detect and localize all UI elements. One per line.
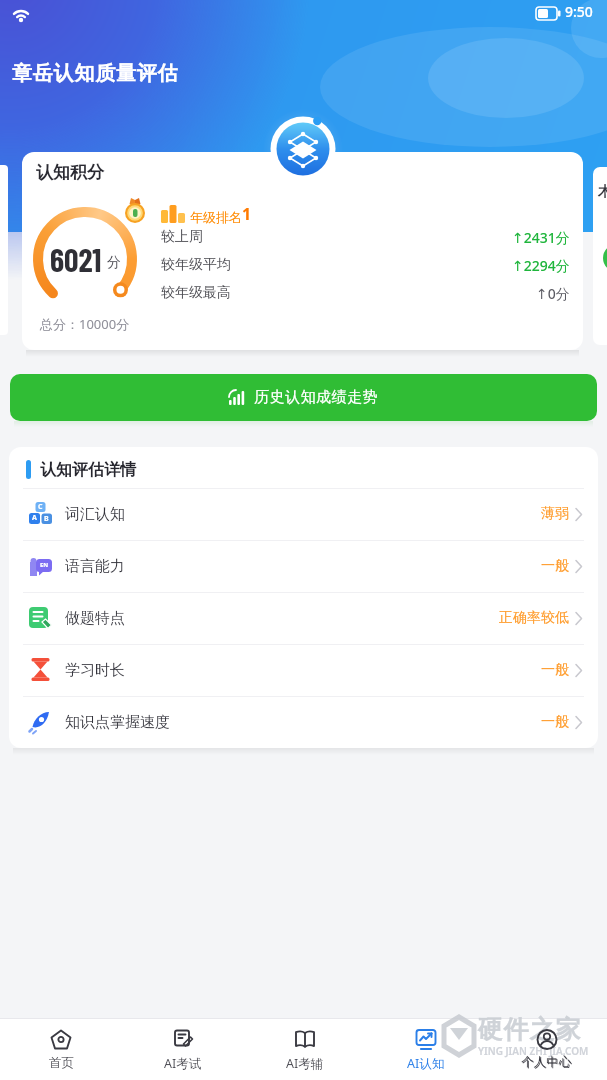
staticText: 个人中心 xyxy=(521,1054,571,1070)
staticText: 个人中心 xyxy=(522,1055,572,1071)
button[interactable]: 学习时长 xyxy=(9,644,598,696)
button[interactable]: AI认知 xyxy=(365,1018,486,1080)
staticText: AI考辅 xyxy=(286,1055,324,1072)
staticText: 一般 xyxy=(541,713,569,731)
button[interactable]: EN xyxy=(9,540,598,592)
staticText: 章岳认知质量评估 xyxy=(12,61,179,86)
staticText: 年级排名 xyxy=(190,209,242,225)
staticText: 较年级最高 xyxy=(161,284,231,302)
staticText: 9:50 xyxy=(565,2,593,21)
button[interactable]: 知识点掌握速度 xyxy=(9,696,598,748)
staticText: AI考试 xyxy=(164,1055,202,1072)
staticText: 正确率较低 xyxy=(499,609,569,627)
staticText: 首页 xyxy=(49,1055,74,1071)
staticText: AI认知 xyxy=(407,1055,445,1072)
button[interactable]: AI考辅 xyxy=(244,1018,365,1080)
staticText: 历史认知成绩走势 xyxy=(254,388,378,407)
staticText: 6021 xyxy=(50,240,102,278)
staticText: 词汇认知 xyxy=(65,505,125,524)
staticText: ↑2431分 xyxy=(512,228,570,247)
staticText: ↑0分 xyxy=(536,284,570,303)
staticText: 认知积分 xyxy=(36,162,104,183)
staticText: C xyxy=(38,502,43,512)
button[interactable]: 认知积分 xyxy=(22,152,583,350)
button[interactable]: 做题特点 xyxy=(9,592,598,644)
staticText: 木 xyxy=(598,183,607,201)
staticText: 认知评估详情 xyxy=(40,460,136,480)
button[interactable]: 首页 xyxy=(0,1018,122,1080)
staticText: 硬件之家 xyxy=(477,1014,581,1045)
button[interactable]: 历史认知成绩走势 xyxy=(10,374,597,421)
staticText: 语言能力 xyxy=(65,557,125,576)
staticText: 做题特点 xyxy=(65,609,125,628)
staticText: 较年级平均 xyxy=(161,256,231,274)
staticText: 一般 xyxy=(541,661,569,679)
staticText: 知识点掌握速度 xyxy=(65,713,170,732)
button[interactable]: 个人中心 xyxy=(486,1018,607,1080)
button[interactable]: AI考试 xyxy=(122,1018,244,1080)
button[interactable]: C xyxy=(9,488,598,540)
staticText: 分 xyxy=(107,254,121,272)
staticText: YING JIAN ZHI JIA.COM xyxy=(478,1044,589,1058)
staticText: 较上周 xyxy=(161,228,203,246)
staticText: 总分：10000分 xyxy=(40,315,130,333)
staticText: A xyxy=(32,513,37,523)
staticText: B xyxy=(44,514,49,524)
staticText: 薄弱 xyxy=(541,505,569,523)
staticText: 学习时长 xyxy=(65,661,125,680)
staticText: ↑2294分 xyxy=(512,256,570,275)
staticText: 一般 xyxy=(541,557,569,575)
staticText: EN xyxy=(40,561,49,569)
staticText: 1 xyxy=(242,203,252,225)
